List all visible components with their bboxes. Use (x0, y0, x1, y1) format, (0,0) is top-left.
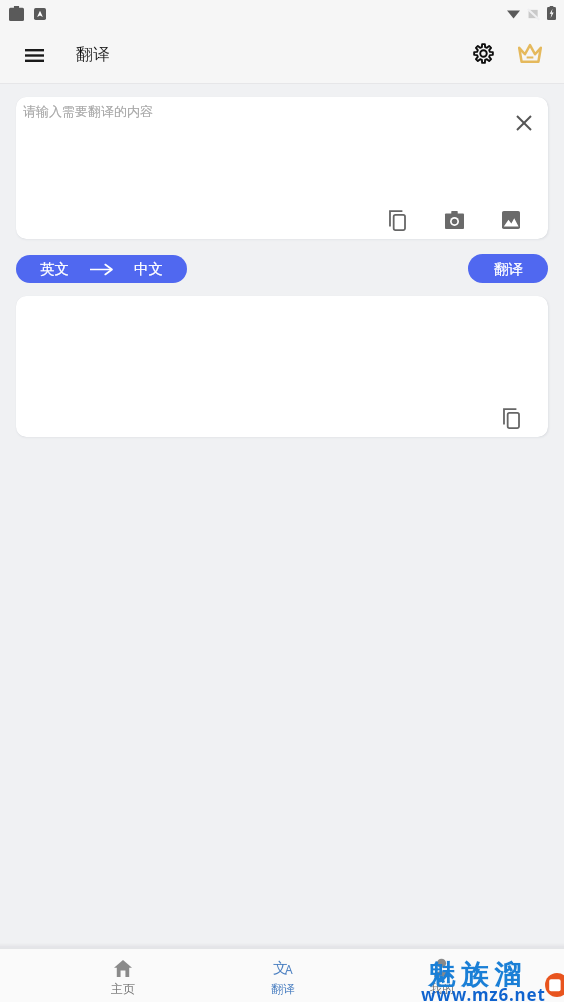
staticText: 翻译 (271, 981, 295, 996)
staticText: 文 (273, 959, 288, 977)
staticText: A (285, 961, 293, 977)
button[interactable]: Gallery (492, 201, 530, 239)
button[interactable]: 文 (203, 949, 362, 1002)
button[interactable]: 主页 (43, 949, 203, 1002)
button[interactable]: 翻译 (468, 254, 548, 283)
button[interactable]: Menu (12, 33, 56, 77)
button[interactable]: Camera (435, 201, 473, 239)
staticText: 翻译 (494, 260, 523, 278)
staticText: 请输入需要翻译的内容 (23, 103, 153, 119)
button[interactable]: Settings (463, 33, 503, 73)
button[interactable]: 英文 (16, 255, 187, 283)
staticText: 中文 (134, 260, 163, 278)
staticText: 英文 (40, 260, 69, 278)
button[interactable]: Copy result (492, 399, 530, 437)
staticText: 魅族溜 (425, 958, 524, 992)
staticText: 我的 (430, 981, 454, 996)
button[interactable]: Premium (510, 33, 550, 73)
staticText: www.mz6.net (421, 983, 546, 1002)
button[interactable]: Copy (378, 201, 416, 239)
button[interactable]: Clear (507, 106, 540, 139)
button[interactable]: 我的 (362, 949, 521, 1002)
staticText: 翻译 (76, 44, 110, 65)
staticText: 主页 (111, 981, 135, 996)
